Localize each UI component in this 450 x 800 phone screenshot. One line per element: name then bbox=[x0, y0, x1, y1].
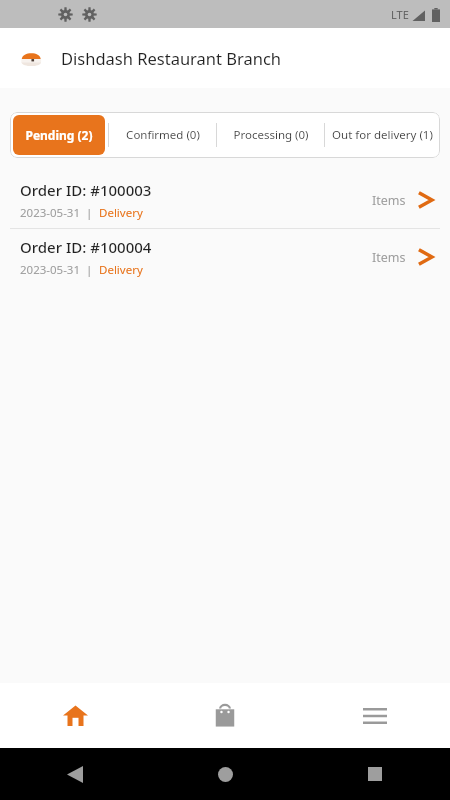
staticText: Delivery bbox=[99, 262, 143, 278]
staticText: Pending (2) bbox=[25, 127, 93, 143]
staticText: 2023-05-31 | bbox=[20, 262, 99, 278]
button[interactable]: Confirmed (0) bbox=[109, 112, 216, 158]
staticText: Items bbox=[372, 192, 406, 209]
staticText: Delivery bbox=[99, 205, 143, 221]
button[interactable]: Home bbox=[150, 748, 300, 800]
staticText: Confirmed (0) bbox=[126, 127, 200, 143]
staticText: Order ID: #100003 bbox=[20, 180, 152, 200]
button[interactable]: Home bbox=[0, 683, 150, 748]
button[interactable]: Order ID: #100004 bbox=[0, 229, 450, 285]
button[interactable]: Processing (0) bbox=[217, 112, 324, 158]
staticText: Items bbox=[372, 249, 406, 266]
button[interactable]: Menu bbox=[300, 683, 450, 748]
other: Open order items bbox=[416, 188, 436, 212]
button[interactable]: Pending (2) bbox=[13, 115, 105, 155]
button[interactable]: Order ID: #100003 bbox=[0, 172, 450, 228]
button[interactable]: Out for delivery (1) bbox=[325, 112, 440, 158]
staticText: Out for delivery (1) bbox=[332, 127, 433, 143]
staticText: Processing (0) bbox=[233, 127, 309, 143]
staticText: LTE bbox=[391, 7, 409, 22]
button[interactable]: Orders bbox=[150, 683, 300, 748]
button[interactable]: Back bbox=[0, 748, 150, 800]
other: Open order items bbox=[416, 245, 436, 269]
staticText: Order ID: #100004 bbox=[20, 237, 152, 257]
staticText: 2023-05-31 | bbox=[20, 205, 99, 221]
button[interactable]: Recents bbox=[300, 748, 450, 800]
staticText: Dishdash Restaurant Branch bbox=[61, 47, 282, 69]
